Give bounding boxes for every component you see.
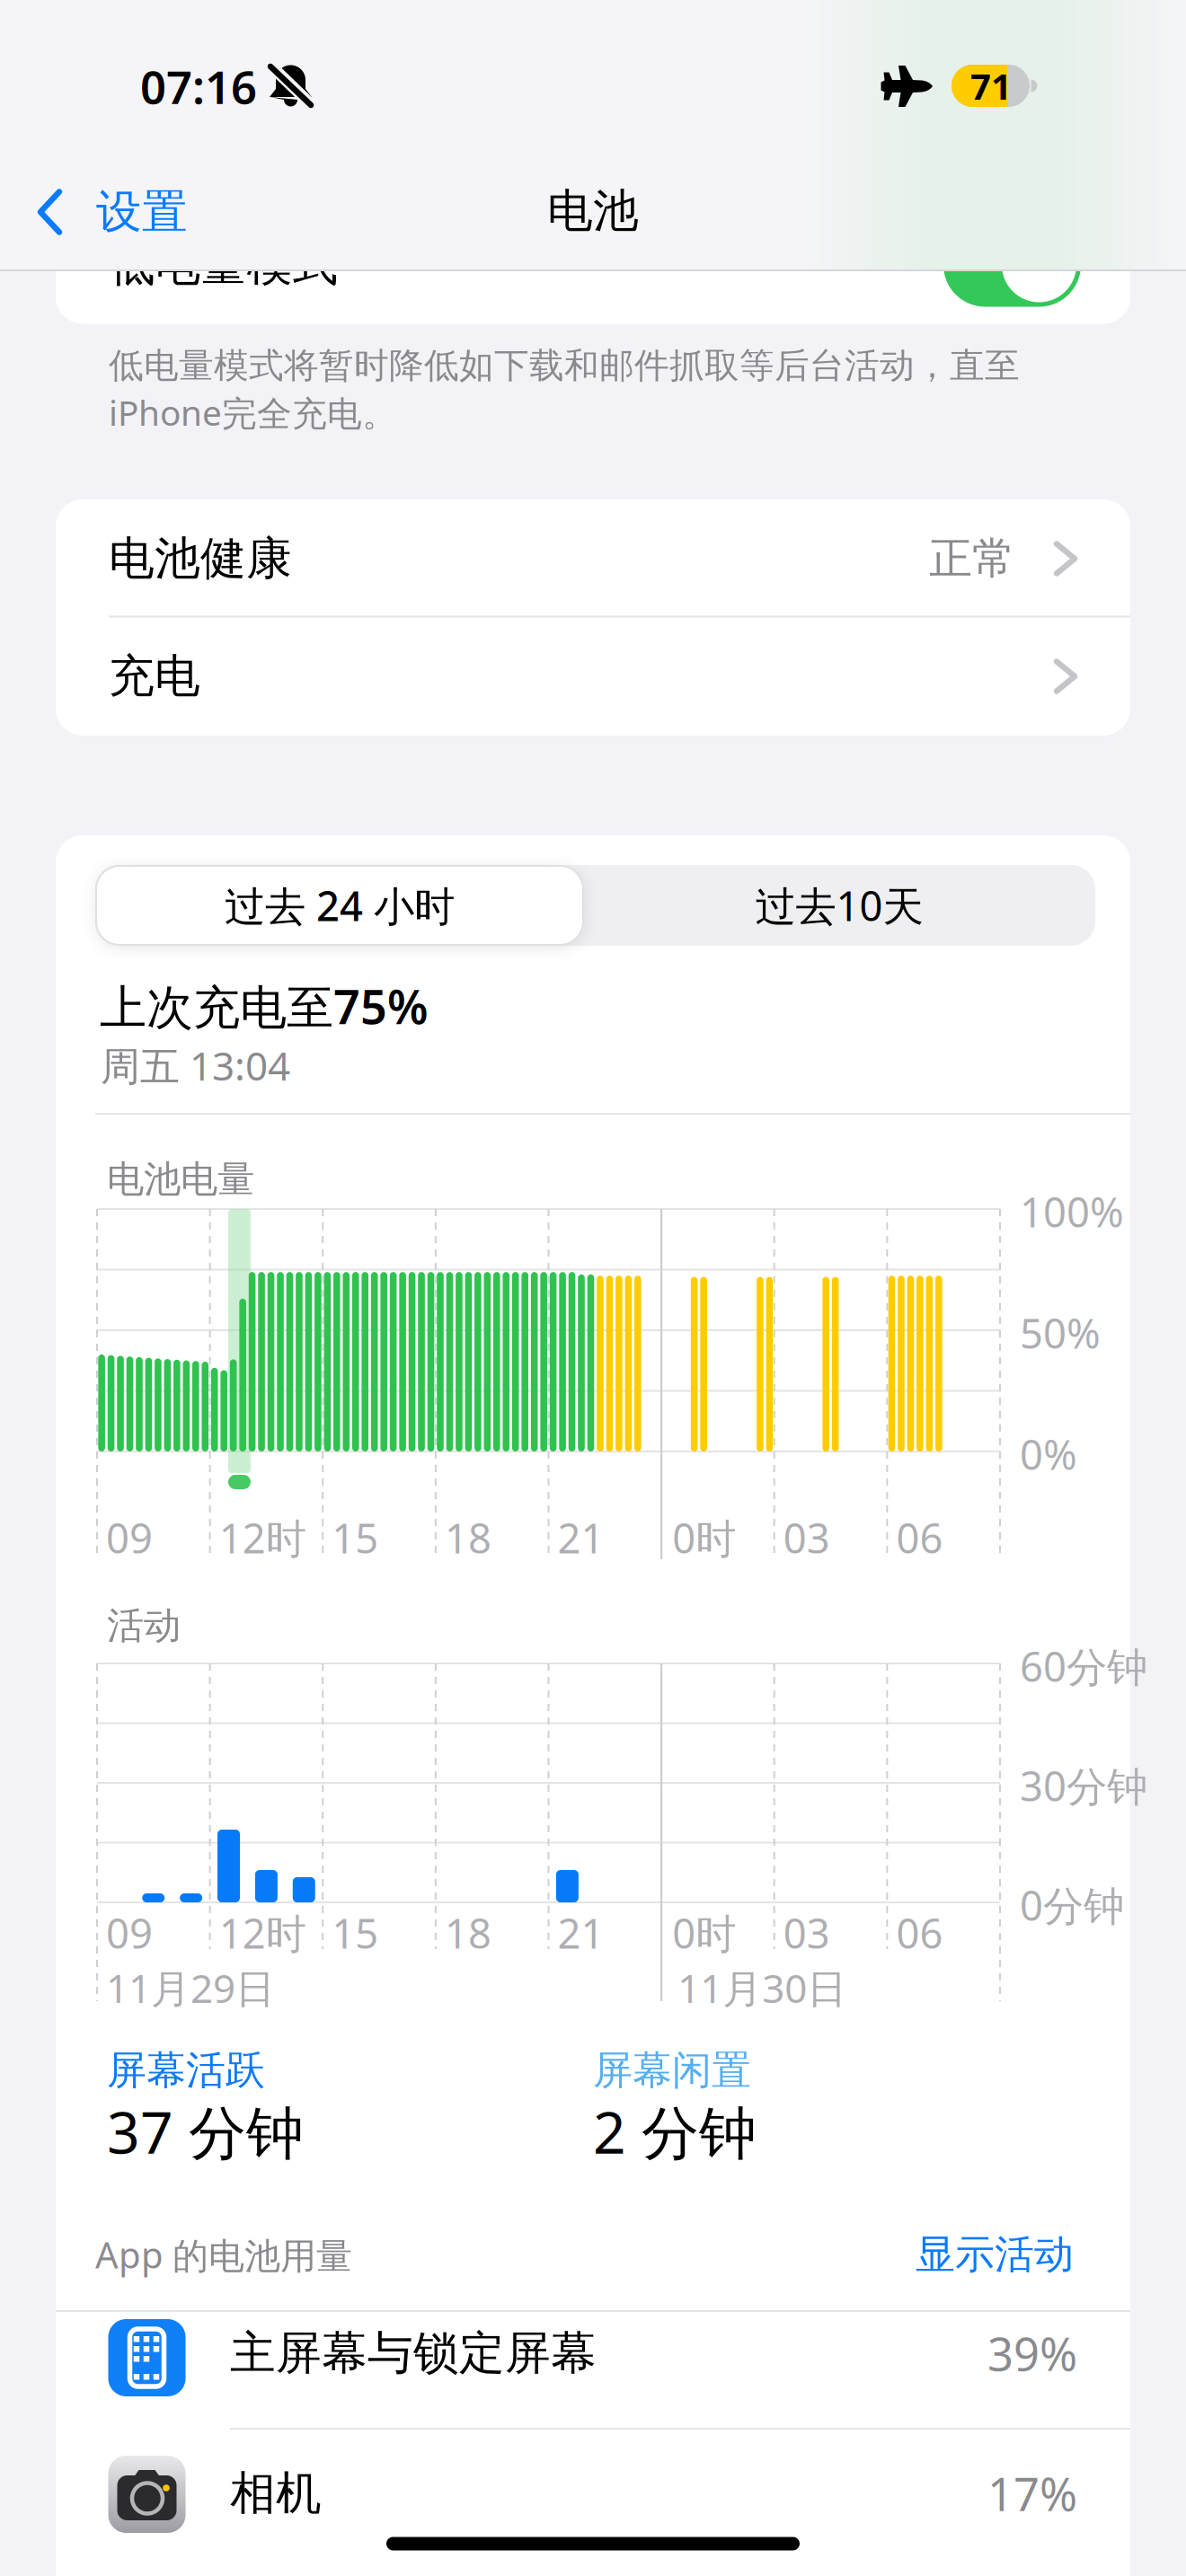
button[interactable]: 相机	[56, 2430, 1130, 2545]
staticText: 71	[970, 62, 1012, 110]
staticText: 15	[332, 1511, 378, 1565]
staticText: 活动	[107, 1603, 181, 1649]
staticText: 主屏幕与锁定屏幕	[230, 2325, 597, 2381]
staticText: 06	[896, 1511, 943, 1565]
staticText: 11月30日	[678, 1961, 846, 2014]
staticText: 09	[106, 1906, 153, 1960]
staticText: 低电量模式	[109, 237, 338, 293]
button[interactable]: 电池健康	[56, 499, 1130, 616]
staticText: 12时	[219, 1906, 306, 1960]
staticText: 设置	[96, 184, 188, 240]
staticText: 过去10天	[755, 878, 923, 932]
staticText: 相机	[230, 2465, 322, 2521]
staticText: 09	[106, 1511, 153, 1565]
staticText: 30分钟	[1020, 1759, 1147, 1813]
staticText: 0%	[1020, 1427, 1077, 1481]
staticText: 上次充电至75%	[100, 975, 429, 1037]
staticText: 18	[445, 1906, 491, 1960]
staticText: 60分钟	[1020, 1639, 1147, 1693]
staticText: 周五 13:04	[101, 1039, 290, 1091]
staticText: 37 分钟	[107, 2093, 304, 2170]
staticText: 正常	[929, 532, 1015, 585]
staticText: 充电	[109, 648, 200, 704]
staticText: 21	[558, 1511, 604, 1565]
staticText: 18	[445, 1511, 491, 1565]
staticText: 电池电量	[107, 1157, 254, 1202]
staticText: 屏幕活跃	[107, 2046, 265, 2095]
staticText: App 的电池用量	[95, 2230, 352, 2278]
staticText: 07:16	[140, 56, 257, 116]
button[interactable]: 设置	[0, 167, 243, 257]
staticText: 电池	[547, 183, 639, 239]
staticText: 11月29日	[106, 1961, 275, 2014]
staticText: 0时	[672, 1511, 736, 1565]
button[interactable]: 过去 24 小时	[96, 866, 583, 945]
button[interactable]: 主屏幕与锁定屏幕	[56, 2312, 1130, 2428]
staticText: 0分钟	[1020, 1878, 1124, 1932]
staticText: 电池健康	[109, 531, 292, 587]
staticText: 过去 24 小时	[225, 878, 455, 932]
staticText: 2 分钟	[593, 2093, 757, 2170]
button[interactable]: 显示活动	[896, 2219, 1093, 2290]
staticText: 低电量模式将暂时降低如下载和邮件抓取等后台活动，直至	[109, 344, 1020, 387]
staticText: 03	[783, 1906, 830, 1960]
button[interactable]: 充电	[56, 618, 1130, 736]
button[interactable]: 低电量模式	[56, 206, 1130, 324]
staticText: 50%	[1020, 1306, 1101, 1360]
staticText: 100%	[1020, 1185, 1124, 1239]
staticText: 39%	[987, 2323, 1077, 2384]
staticText: 0时	[672, 1906, 736, 1960]
button[interactable]: 过去10天	[588, 865, 1091, 946]
staticText: 12时	[219, 1511, 306, 1565]
staticText: 06	[896, 1906, 943, 1960]
staticText: 15	[332, 1906, 378, 1960]
staticText: iPhone完全充电。	[109, 389, 397, 435]
staticText: 03	[783, 1511, 830, 1565]
staticText: 显示活动	[916, 2230, 1074, 2279]
staticText: 17%	[987, 2463, 1077, 2524]
staticText: 21	[558, 1906, 604, 1960]
staticText: 屏幕闲置	[593, 2046, 751, 2095]
